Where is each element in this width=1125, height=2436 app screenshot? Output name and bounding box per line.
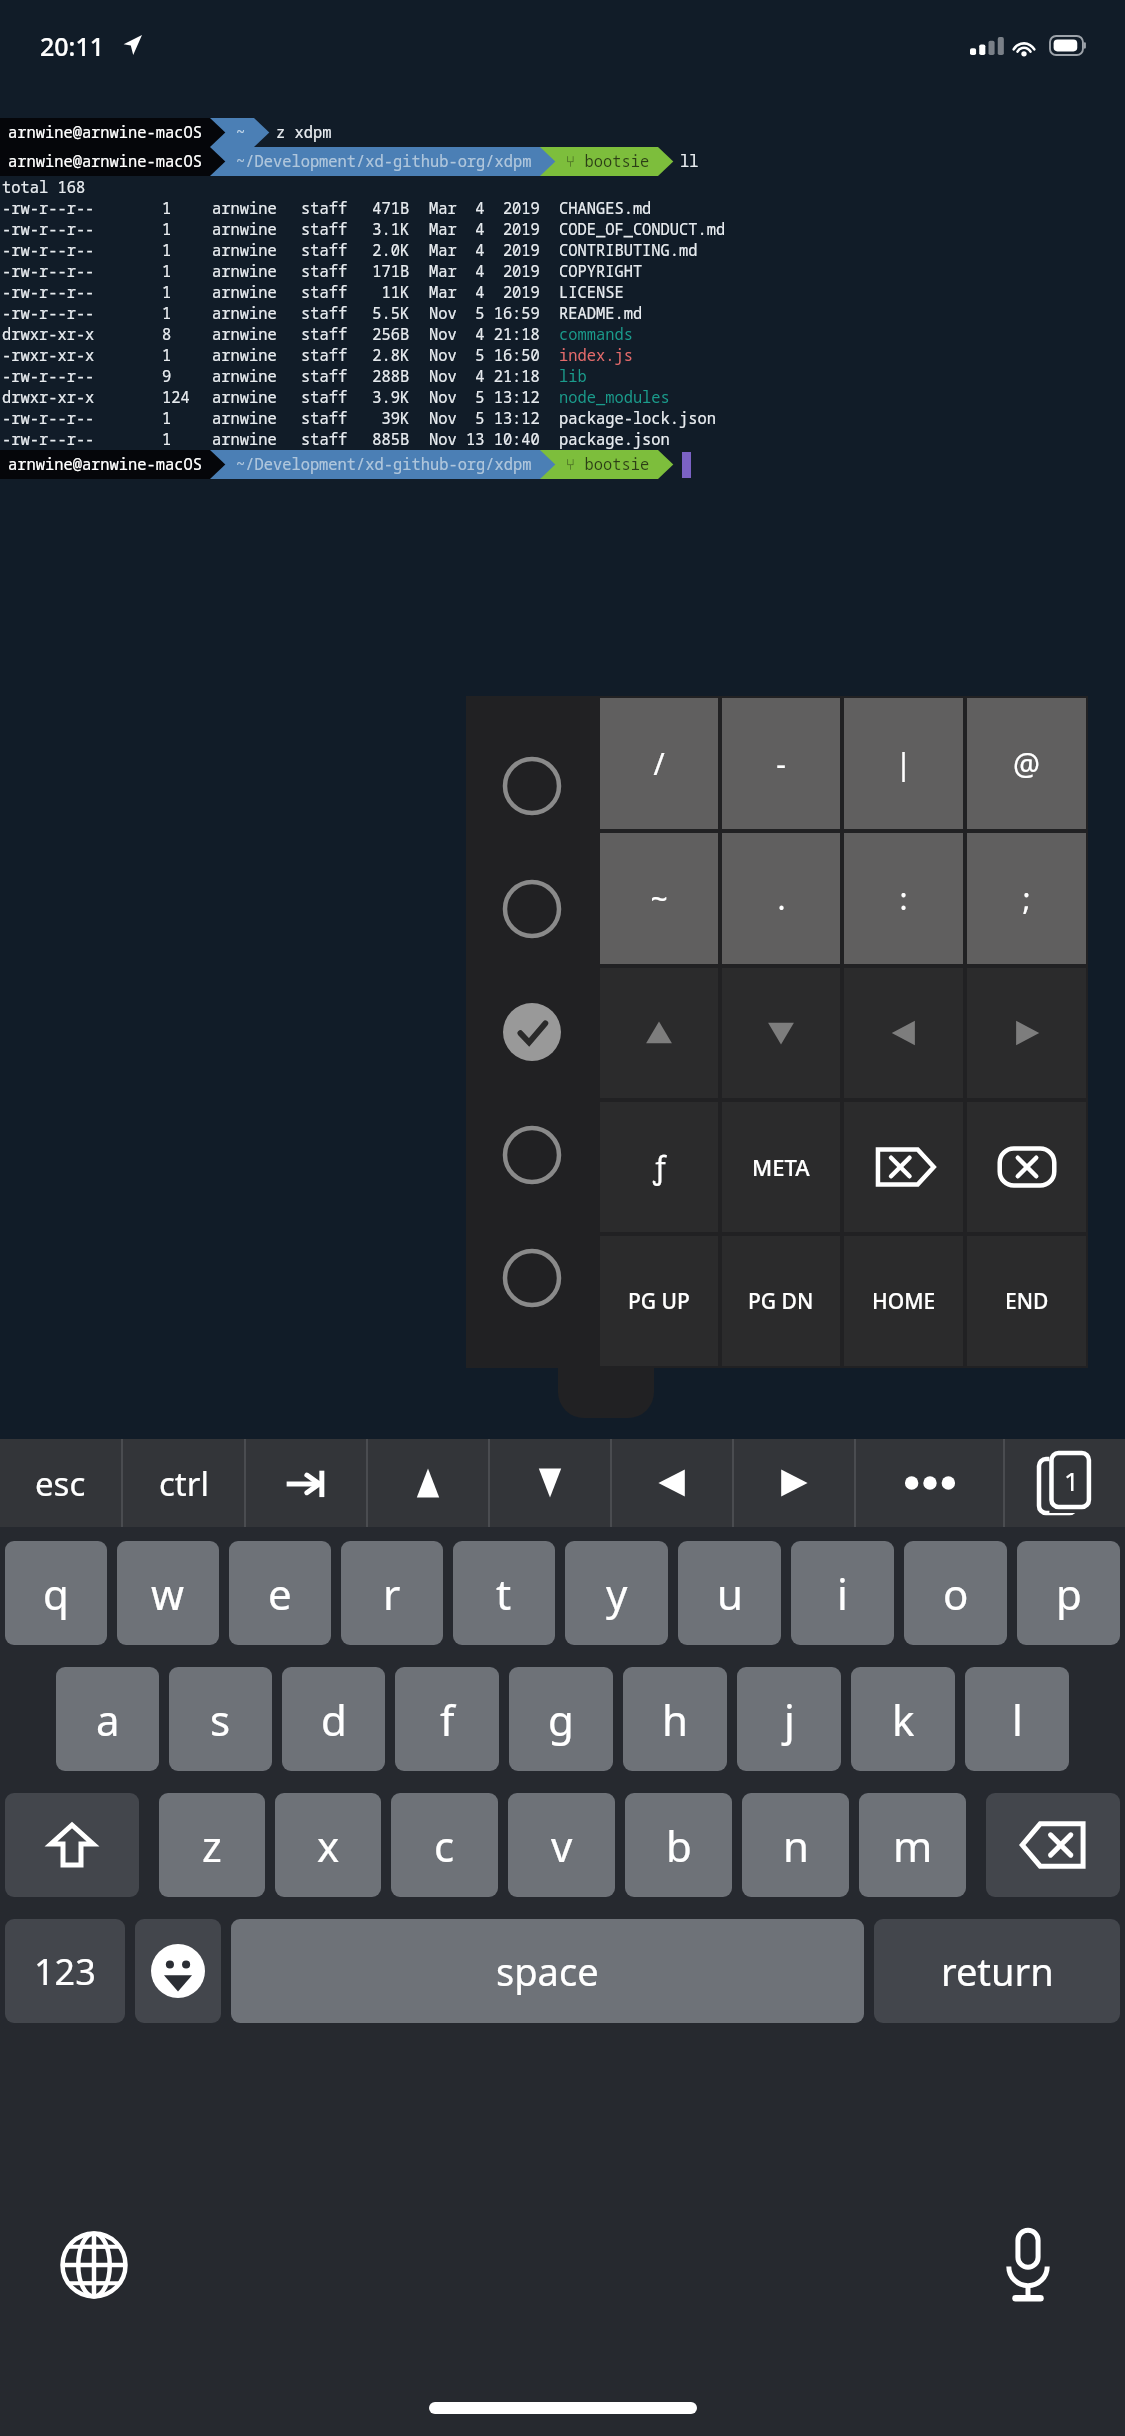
button[interactable]: q xyxy=(5,1541,107,1645)
button[interactable]: y xyxy=(565,1541,668,1645)
button[interactable]: Up xyxy=(600,968,718,1098)
button[interactable]: return xyxy=(874,1919,1120,2023)
button[interactable]: Emoji xyxy=(135,1919,221,2023)
button[interactable]: More xyxy=(856,1439,1003,1527)
button[interactable]: Collapse panel xyxy=(558,1368,654,1418)
button[interactable]: Right xyxy=(734,1439,854,1527)
button[interactable]: 123 xyxy=(5,1919,125,2023)
button[interactable]: Backspace xyxy=(986,1793,1120,1897)
staticText: Mar 4 2019 xyxy=(429,261,559,282)
button[interactable]: ; xyxy=(967,833,1086,964)
staticText: ⑂ bootsie xyxy=(566,151,650,172)
button[interactable]: Sessions xyxy=(1005,1439,1125,1527)
staticText: -rw-r--r-- xyxy=(2,408,162,429)
button[interactable]: d xyxy=(282,1667,385,1771)
button[interactable]: l xyxy=(965,1667,1069,1771)
button[interactable]: | xyxy=(844,698,963,829)
button[interactable]: : xyxy=(844,833,963,964)
button[interactable]: HOME xyxy=(844,1236,963,1366)
button[interactable]: i xyxy=(791,1541,894,1645)
button[interactable]: Layer 1 xyxy=(499,753,565,819)
button[interactable]: m xyxy=(859,1793,966,1897)
button[interactable]: z xyxy=(159,1793,265,1897)
button[interactable]: s xyxy=(169,1667,272,1771)
button[interactable]: o xyxy=(904,1541,1007,1645)
button[interactable]: x xyxy=(275,1793,381,1897)
staticText: Mar 4 2019 xyxy=(429,282,559,303)
button[interactable]: t xyxy=(453,1541,555,1645)
button[interactable]: . xyxy=(722,833,840,964)
button[interactable]: META xyxy=(722,1102,840,1232)
staticText: staff xyxy=(301,240,363,261)
staticText: Mar 4 2019 xyxy=(429,240,559,261)
button[interactable]: Up xyxy=(368,1439,488,1527)
staticText: staff xyxy=(301,366,363,387)
button[interactable]: k xyxy=(851,1667,955,1771)
button[interactable]: ~ xyxy=(600,833,718,964)
button[interactable]: esc xyxy=(0,1439,121,1527)
button[interactable]: PG UP xyxy=(600,1236,718,1366)
button[interactable]: n xyxy=(742,1793,849,1897)
button[interactable]: f xyxy=(395,1667,499,1771)
staticText: 288B xyxy=(363,366,423,387)
button[interactable]: Layer 4 xyxy=(499,1122,565,1188)
button[interactable]: r xyxy=(341,1541,443,1645)
staticText: package-lock.json xyxy=(559,408,716,429)
staticText: : xyxy=(899,878,908,919)
staticText: Nov 5 13:12 xyxy=(429,387,559,408)
staticText: ⑂ bootsie xyxy=(566,454,650,475)
button[interactable]: @ xyxy=(967,698,1086,829)
staticText: staff xyxy=(301,198,363,219)
button[interactable]: Delete forward xyxy=(844,1102,963,1232)
button[interactable]: ƒ xyxy=(600,1102,718,1232)
button[interactable]: j xyxy=(737,1667,841,1771)
button[interactable]: b xyxy=(625,1793,732,1897)
button[interactable]: ctrl xyxy=(123,1439,244,1527)
staticText: ctrl xyxy=(159,1461,209,1506)
staticText: 2.0K xyxy=(363,240,423,261)
button[interactable]: g xyxy=(509,1667,613,1771)
button[interactable]: PG DN xyxy=(722,1236,840,1366)
staticText: a xyxy=(96,1691,120,1748)
button[interactable]: Layer 3 xyxy=(499,999,565,1065)
staticText: / xyxy=(653,743,665,784)
button[interactable]: Down xyxy=(722,968,840,1098)
staticText: total 168 xyxy=(2,177,86,198)
staticText: Nov 5 13:12 xyxy=(429,408,559,429)
button[interactable]: v xyxy=(508,1793,615,1897)
staticText: ƒ xyxy=(653,1147,666,1188)
button[interactable]: Layer 2 xyxy=(499,876,565,942)
staticText: staff xyxy=(301,219,363,240)
staticText: arnwine xyxy=(212,324,293,345)
button[interactable]: Down xyxy=(490,1439,610,1527)
staticText: 11K xyxy=(363,282,423,303)
staticText: staff xyxy=(301,345,363,366)
button[interactable]: u xyxy=(678,1541,781,1645)
staticText: 5.5K xyxy=(363,303,423,324)
staticText: ~/Development/xd-github-org/xdpm xyxy=(236,454,532,475)
staticText: CONTRIBUTING.md xyxy=(559,240,698,261)
button[interactable]: w xyxy=(117,1541,219,1645)
staticText: staff xyxy=(301,261,363,282)
button[interactable]: Dictate xyxy=(989,2226,1067,2304)
button[interactable]: Layer 5 xyxy=(499,1245,565,1311)
button[interactable]: Left xyxy=(612,1439,732,1527)
button[interactable]: a xyxy=(56,1667,159,1771)
button[interactable]: space xyxy=(231,1919,864,2023)
button[interactable]: Shift xyxy=(5,1793,139,1897)
button[interactable]: c xyxy=(391,1793,498,1897)
button[interactable]: p xyxy=(1017,1541,1120,1645)
staticText: k xyxy=(892,1691,915,1748)
button[interactable]: Next keyboard xyxy=(55,2226,133,2304)
button[interactable]: Tab xyxy=(246,1439,366,1527)
button[interactable]: e xyxy=(229,1541,331,1645)
button[interactable]: Left xyxy=(844,968,963,1098)
button[interactable]: h xyxy=(623,1667,727,1771)
button[interactable]: / xyxy=(600,698,718,829)
button[interactable]: END xyxy=(967,1236,1086,1366)
button[interactable]: Close xyxy=(967,1102,1086,1232)
staticText: arnwine xyxy=(212,345,293,366)
staticText: r xyxy=(383,1565,401,1622)
button[interactable]: Right xyxy=(967,968,1086,1098)
button[interactable]: - xyxy=(722,698,840,829)
